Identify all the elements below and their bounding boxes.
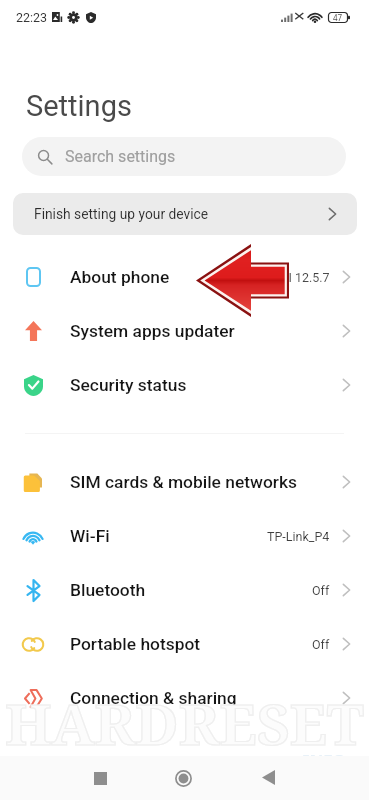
button[interactable]: System apps updater	[0, 304, 369, 358]
staticText: System apps updater	[70, 321, 235, 341]
staticText: About phone	[70, 267, 170, 287]
staticText: Settings	[26, 89, 132, 123]
staticText: 47	[333, 12, 343, 23]
button[interactable]: Search settings	[22, 137, 346, 176]
button[interactable]: SIM cards & mobile networks	[0, 455, 369, 509]
staticText: Bluetooth	[70, 580, 146, 600]
staticText: TP-Link_P4	[267, 529, 330, 544]
staticText: .INFO	[298, 750, 346, 773]
button[interactable]: Portable hotspot	[0, 617, 369, 671]
button[interactable]: Wi-Fi	[0, 509, 369, 563]
staticText: Connection & sharing	[70, 688, 237, 708]
button[interactable]: Back	[247, 756, 290, 799]
button[interactable]: Home	[162, 757, 205, 800]
button[interactable]: Security status	[0, 358, 369, 412]
staticText: Search settings	[65, 147, 176, 166]
button[interactable]: Connection & sharing	[0, 671, 369, 725]
staticText: Portable hotspot	[70, 634, 201, 654]
staticText: Security status	[70, 375, 187, 395]
button[interactable]: About phone	[0, 250, 369, 304]
staticText: Wi-Fi	[70, 526, 110, 546]
staticText: HARDRESET	[0, 684, 369, 762]
staticText: Off	[312, 583, 330, 598]
staticText: Off	[312, 637, 330, 652]
staticText: 22:23	[16, 10, 48, 25]
staticText: MIUI 12.5.7	[266, 270, 330, 285]
staticText: SIM cards & mobile networks	[70, 472, 297, 492]
button[interactable]: Finish setting up your device	[13, 193, 357, 235]
button[interactable]: Bluetooth	[0, 563, 369, 617]
button[interactable]: Recent apps	[79, 757, 122, 800]
staticText: Finish setting up your device	[34, 206, 209, 222]
staticText: HARDRESET	[0, 684, 369, 762]
